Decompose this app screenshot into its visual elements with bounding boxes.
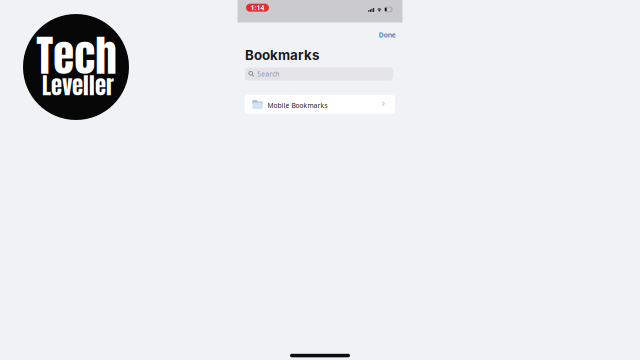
staticText: Done bbox=[379, 30, 396, 39]
staticText: Search bbox=[257, 70, 279, 78]
button[interactable]: Search bbox=[245, 67, 393, 80]
staticText: Bookmarks bbox=[245, 47, 319, 63]
staticText: Mobile Bookmarks bbox=[267, 101, 327, 110]
staticText: Leveller bbox=[42, 68, 114, 103]
staticText: Tech bbox=[36, 24, 117, 88]
button[interactable]: Done bbox=[375, 27, 400, 42]
staticText: 1:14 bbox=[250, 3, 264, 12]
button[interactable]: Mobile Bookmarks bbox=[245, 95, 395, 114]
